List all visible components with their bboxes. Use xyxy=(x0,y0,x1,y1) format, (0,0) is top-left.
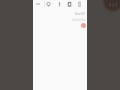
button[interactable]: what tim xyxy=(72,17,86,21)
button[interactable]: Save xyxy=(65,0,74,8)
button[interactable]: More options xyxy=(75,0,84,8)
button[interactable]: Messages xyxy=(44,0,53,8)
button[interactable]: Contact avatar xyxy=(81,23,86,28)
button[interactable]: Menu xyxy=(34,0,42,8)
staticText: Nov 20 xyxy=(75,12,85,15)
staticText: what tim xyxy=(72,17,86,21)
button[interactable]: Voice search xyxy=(55,0,64,8)
